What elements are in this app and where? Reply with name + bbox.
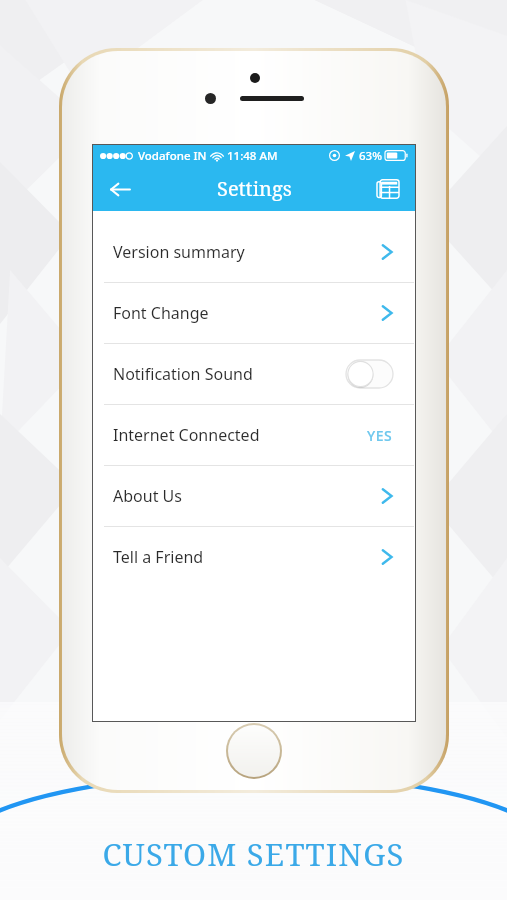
button[interactable]: Version summary xyxy=(93,222,415,282)
button[interactable]: Tell a Friend xyxy=(93,527,415,587)
button[interactable]: Font Change xyxy=(93,283,415,343)
staticText: Tell a Friend xyxy=(113,546,204,568)
staticText: Notification Sound xyxy=(113,363,253,385)
button[interactable]: Internet Connected xyxy=(93,405,415,465)
button[interactable]: News xyxy=(369,170,407,208)
staticText: Settings xyxy=(217,175,292,202)
staticText: Font Change xyxy=(113,302,209,324)
button[interactable]: About Us xyxy=(93,466,415,526)
staticText: Internet Connected xyxy=(113,424,260,446)
staticText: 11:48 AM xyxy=(227,148,278,164)
button[interactable]: Notification Sound xyxy=(93,344,415,404)
staticText: Version summary xyxy=(113,241,245,263)
staticText: About Us xyxy=(113,485,182,507)
staticText: Vodafone IN xyxy=(138,148,207,164)
staticText: 63% xyxy=(359,148,382,164)
staticText: CUSTOM SETTINGS xyxy=(0,833,507,875)
staticText: YES xyxy=(367,426,393,445)
button[interactable]: Notification sound toggle xyxy=(346,360,393,388)
button[interactable]: Back xyxy=(101,170,139,208)
